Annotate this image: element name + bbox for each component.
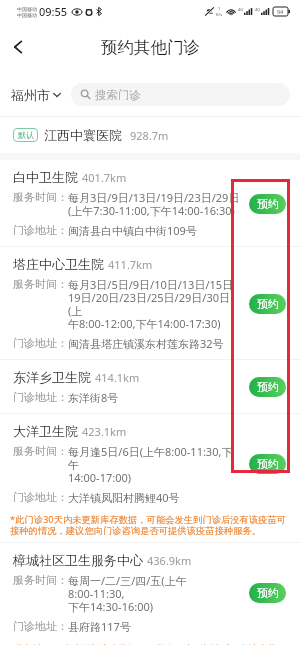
button[interactable]: 预约 — [249, 194, 286, 214]
staticText: 搜索门诊 — [95, 88, 141, 102]
staticText: 白中卫生院 — [13, 169, 78, 185]
staticText: *此门诊30天内未更新库存数据，可能会发生到门诊后没有该疫苗可 接种的情况，建议… — [10, 642, 290, 645]
staticText: 默认 — [18, 130, 34, 140]
button[interactable]: Back — [3, 32, 33, 62]
button[interactable]: 预约 — [249, 294, 286, 314]
button[interactable]: 福州市 — [11, 87, 63, 103]
button[interactable]: 大洋卫生院 — [0, 414, 300, 543]
button[interactable]: 默认 — [0, 117, 300, 153]
staticText: 塔庄中心卫生院 — [13, 256, 104, 272]
staticText: 门诊地址： — [13, 390, 68, 404]
staticText: 县府路117号 — [68, 619, 131, 634]
button[interactable]: 预约 — [249, 583, 286, 603]
staticText: 4G — [255, 7, 261, 12]
staticText: 1 — [218, 6, 221, 12]
staticText: 门诊地址： — [13, 619, 68, 633]
button[interactable]: 白中卫生院 — [0, 160, 300, 247]
staticText: 423.1km — [82, 424, 127, 439]
staticText: *此门诊30天内未更新库存数据，可能会发生到门诊后没有该疫苗可 接种的情况，建议… — [10, 513, 290, 537]
button[interactable]: 樟城社区卫生服务中心 — [0, 543, 300, 650]
staticText: 江西中寰医院 — [44, 127, 122, 143]
staticText: 闽清县白中镇白中街109号 — [68, 223, 197, 238]
staticText: 闽清县塔庄镇溪东村莲东路32号 — [68, 336, 224, 351]
staticText: 门诊地址： — [13, 490, 68, 504]
staticText: 大洋镇凤阳村腾鲤40号 — [68, 490, 180, 505]
staticText: 每月3日/9日/13日/19日/23日/29日 (上午7:30-11:00,下午… — [68, 190, 240, 218]
staticText: 411.7km — [108, 257, 153, 272]
staticText: 服务时间： — [13, 444, 68, 458]
staticText: 09:55 — [39, 4, 68, 19]
staticText: 每月逢5日/6日(上午8:00-11:30,下午 14:00-17:00) — [68, 444, 242, 485]
staticText: 大洋卫生院 — [13, 423, 78, 439]
staticText: 东洋乡卫生院 — [13, 369, 91, 385]
staticText: 服务时间： — [13, 277, 68, 291]
staticText: 服务时间： — [13, 190, 68, 204]
staticText: 预约 — [257, 297, 279, 311]
staticText: 预约其他门诊 — [101, 37, 200, 58]
staticText: 预约 — [257, 586, 279, 600]
button[interactable]: 搜索门诊 — [71, 83, 290, 106]
staticText: 每月3日/5日/9日/10日/13日/15日 19日/20日/23日/25日/2… — [68, 277, 242, 331]
staticText: 436.9km — [147, 553, 192, 568]
staticText: 服务时间： — [13, 573, 68, 587]
button[interactable]: 塔庄中心卫生院 — [0, 247, 300, 360]
staticText: 401.7km — [82, 170, 127, 185]
staticText: 樟城社区卫生服务中心 — [13, 552, 143, 568]
staticText: 门诊地址： — [13, 336, 68, 350]
staticText: K/s — [216, 12, 223, 18]
staticText: 中国移动 — [17, 6, 37, 12]
staticText: 预约 — [257, 197, 279, 211]
staticText: 4G — [238, 7, 244, 12]
staticText: 福州市 — [11, 87, 50, 103]
staticText: 414.1km — [95, 370, 140, 385]
staticText: 预约 — [257, 457, 279, 471]
button[interactable]: 预约 — [249, 454, 286, 474]
staticText: 94 — [277, 8, 284, 15]
button[interactable]: 东洋乡卫生院 — [0, 360, 300, 414]
staticText: 中国移动 — [17, 12, 37, 18]
staticText: 预约 — [257, 380, 279, 394]
staticText: 每周一/二/三/四/五(上午8:00-11:30, 下午14:30-16:00) — [68, 573, 242, 614]
staticText: 东洋街8号 — [68, 390, 119, 405]
staticText: 928.7m — [130, 128, 169, 143]
staticText: 门诊地址： — [13, 223, 68, 237]
button[interactable]: 预约 — [249, 377, 286, 397]
